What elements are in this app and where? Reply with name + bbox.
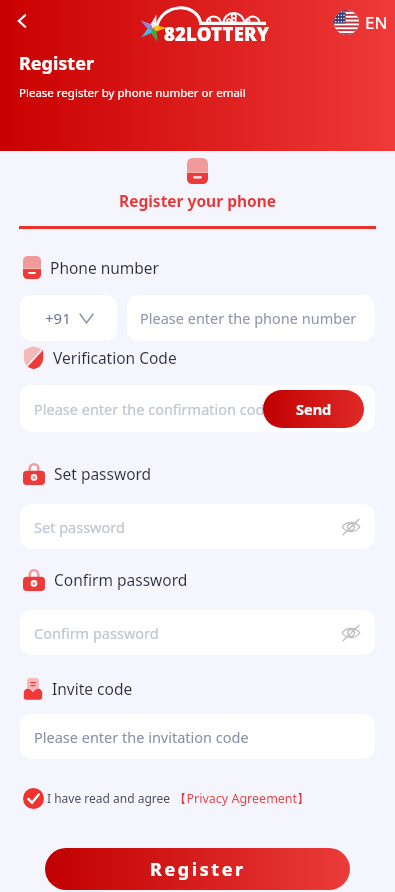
button[interactable]: Confirm password bbox=[20, 610, 375, 655]
staticText: Please enter the phone number bbox=[140, 308, 357, 328]
staticText: Please enter the confirmation code bbox=[34, 399, 273, 419]
staticText: Phone number bbox=[50, 257, 160, 278]
staticText: Please register by phone number or email bbox=[19, 85, 246, 101]
button[interactable]: Show password bbox=[338, 620, 364, 646]
staticText: Register bbox=[19, 51, 94, 76]
button[interactable]: Back bbox=[4, 3, 40, 39]
staticText: Send bbox=[296, 399, 332, 419]
staticText: Set password bbox=[34, 517, 125, 537]
button[interactable]: +91 bbox=[20, 295, 117, 341]
staticText: Register your phone bbox=[119, 190, 277, 211]
staticText: Please enter the invitation code bbox=[34, 727, 249, 747]
staticText: Confirm password bbox=[34, 623, 159, 643]
staticText: Register bbox=[150, 857, 246, 882]
button[interactable]: Show password bbox=[338, 514, 364, 540]
staticText: Invite code bbox=[52, 678, 133, 699]
staticText: +91 bbox=[45, 308, 71, 328]
staticText: Verification Code bbox=[53, 347, 177, 368]
button[interactable]: Please enter the confirmation code bbox=[20, 385, 375, 432]
button[interactable]: 【Privacy Agreement】 bbox=[174, 790, 310, 807]
staticText: Set password bbox=[54, 463, 152, 484]
button[interactable]: Agree to privacy policy bbox=[22, 787, 44, 809]
staticText: I have read and agree bbox=[47, 790, 171, 806]
button[interactable]: EN bbox=[334, 10, 388, 35]
staticText: 82LOTTERY bbox=[164, 21, 270, 46]
button[interactable]: Send bbox=[263, 390, 364, 428]
button[interactable]: Please enter the invitation code bbox=[20, 714, 375, 759]
staticText: Confirm password bbox=[54, 569, 188, 590]
staticText: EN bbox=[365, 11, 388, 34]
button[interactable]: Register bbox=[45, 848, 350, 890]
button[interactable]: Please enter the phone number bbox=[127, 295, 375, 341]
button[interactable]: Set password bbox=[20, 504, 375, 549]
